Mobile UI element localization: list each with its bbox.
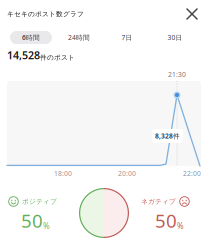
staticText: 21:30 <box>168 70 186 79</box>
staticText: 8,328件 <box>155 131 180 140</box>
button[interactable]: 7日 <box>103 31 151 44</box>
staticText: 24時間 <box>68 33 90 42</box>
staticText: キセキのポスト数グラフ <box>7 10 84 18</box>
staticText: 50 <box>21 208 43 233</box>
staticText: 14,528 <box>7 48 40 62</box>
staticText: 22:00 <box>183 169 201 178</box>
staticText: ネガティブ <box>141 197 176 206</box>
button[interactable]: 24時間 <box>55 31 103 44</box>
staticText: 50 <box>155 208 177 233</box>
staticText: % <box>177 221 184 231</box>
button[interactable]: 閉じる <box>183 5 201 23</box>
button[interactable]: 6時間 <box>7 31 55 44</box>
staticText: 6時間 <box>22 33 40 42</box>
staticText: % <box>43 221 50 231</box>
staticText: 30日 <box>167 33 182 42</box>
staticText: ポジティブ <box>22 197 57 206</box>
staticText: 7日 <box>121 33 132 42</box>
staticText: 件のポスト <box>40 53 75 62</box>
button[interactable]: 30日 <box>151 31 199 44</box>
staticText: 18:00 <box>54 169 72 178</box>
staticText: 20:00 <box>118 169 136 178</box>
